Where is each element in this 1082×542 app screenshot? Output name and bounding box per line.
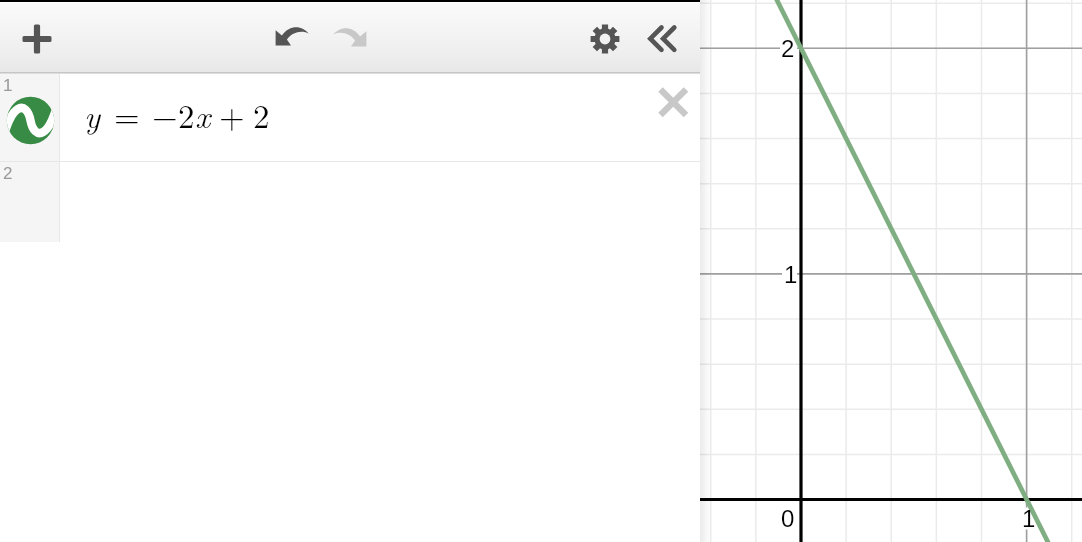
- staticText: 2: [3, 164, 13, 183]
- button[interactable]: Add expression: [12, 14, 62, 64]
- staticText: x: [195, 91, 211, 138]
- staticText: =: [114, 91, 140, 138]
- staticText: +: [219, 91, 245, 138]
- button[interactable]: 1: [0, 74, 700, 162]
- button[interactable]: Undo: [268, 11, 316, 59]
- button[interactable]: Toggle graph visibility: [2, 92, 59, 149]
- staticText: 2: [178, 91, 195, 138]
- staticText: 1: [784, 261, 798, 288]
- button[interactable]: Delete expression: [650, 79, 696, 125]
- staticText: −: [152, 91, 178, 138]
- staticText: 2: [253, 91, 270, 138]
- button[interactable]: Settings: [581, 15, 629, 63]
- staticText: 1: [1022, 505, 1036, 532]
- button[interactable]: Collapse panel: [638, 15, 686, 63]
- button[interactable]: 2: [0, 162, 700, 242]
- staticText: 2: [781, 35, 795, 62]
- staticText: 0: [781, 505, 795, 532]
- button[interactable]: Redo: [326, 12, 374, 60]
- staticText: y: [84, 91, 101, 138]
- staticText: 1: [3, 76, 13, 95]
